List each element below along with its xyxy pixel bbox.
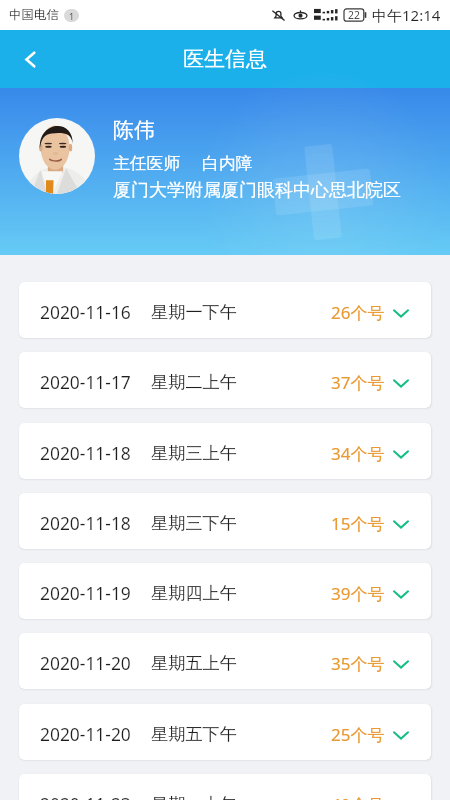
staticText: 医生信息 (183, 46, 267, 72)
staticText: 15个号 (331, 512, 385, 535)
button[interactable]: 2020-11-20 (19, 633, 431, 689)
staticText: 1 (69, 10, 75, 22)
staticText: 39个号 (331, 582, 385, 605)
staticText: 34个号 (331, 442, 385, 465)
staticText: 星期四上午 (151, 582, 237, 604)
staticText: 2020-11-16 (40, 300, 131, 324)
staticText: 星期一上午 (151, 793, 237, 800)
staticText: 中国电信 (9, 7, 59, 23)
staticText: 2020-11-19 (40, 581, 131, 605)
button[interactable]: 返回 (7, 36, 53, 82)
staticText: 主任医师 白内障 (113, 151, 253, 174)
button[interactable]: 2020-11-18 (19, 493, 431, 549)
button[interactable]: 2020-11-20 (19, 704, 431, 760)
staticText: 2020-11-20 (40, 651, 131, 675)
staticText: 星期三下午 (151, 512, 237, 534)
staticText: 星期五上午 (151, 652, 237, 674)
staticText: 26个号 (331, 301, 385, 324)
button[interactable]: 2020-11-17 (19, 352, 431, 408)
staticText: 星期三上午 (151, 442, 237, 464)
staticText: 40个号 (331, 793, 385, 800)
staticText: 中午12:14 (372, 5, 441, 25)
staticText: 2020-11-23 (40, 792, 131, 800)
staticText: 2020-11-20 (40, 722, 131, 746)
staticText: 37个号 (331, 371, 385, 394)
staticText: 2020-11-17 (40, 370, 131, 394)
button[interactable]: 2020-11-16 (19, 282, 431, 338)
staticText: 厦门大学附属厦门眼科中心思北院区 (113, 179, 401, 202)
button[interactable]: 2020-11-23 (19, 774, 431, 800)
button[interactable]: 2020-11-19 (19, 563, 431, 619)
staticText: 35个号 (331, 652, 385, 675)
staticText: 星期一下午 (151, 301, 237, 323)
button[interactable]: 2020-11-18 (19, 423, 431, 479)
staticText: 2020-11-18 (40, 441, 131, 465)
staticText: 陈伟 (113, 117, 155, 143)
staticText: 星期二上午 (151, 371, 237, 393)
staticText: 22 (348, 8, 361, 22)
staticText: 25个号 (331, 723, 385, 746)
staticText: 星期五下午 (151, 723, 237, 745)
staticText: 2020-11-18 (40, 511, 131, 535)
